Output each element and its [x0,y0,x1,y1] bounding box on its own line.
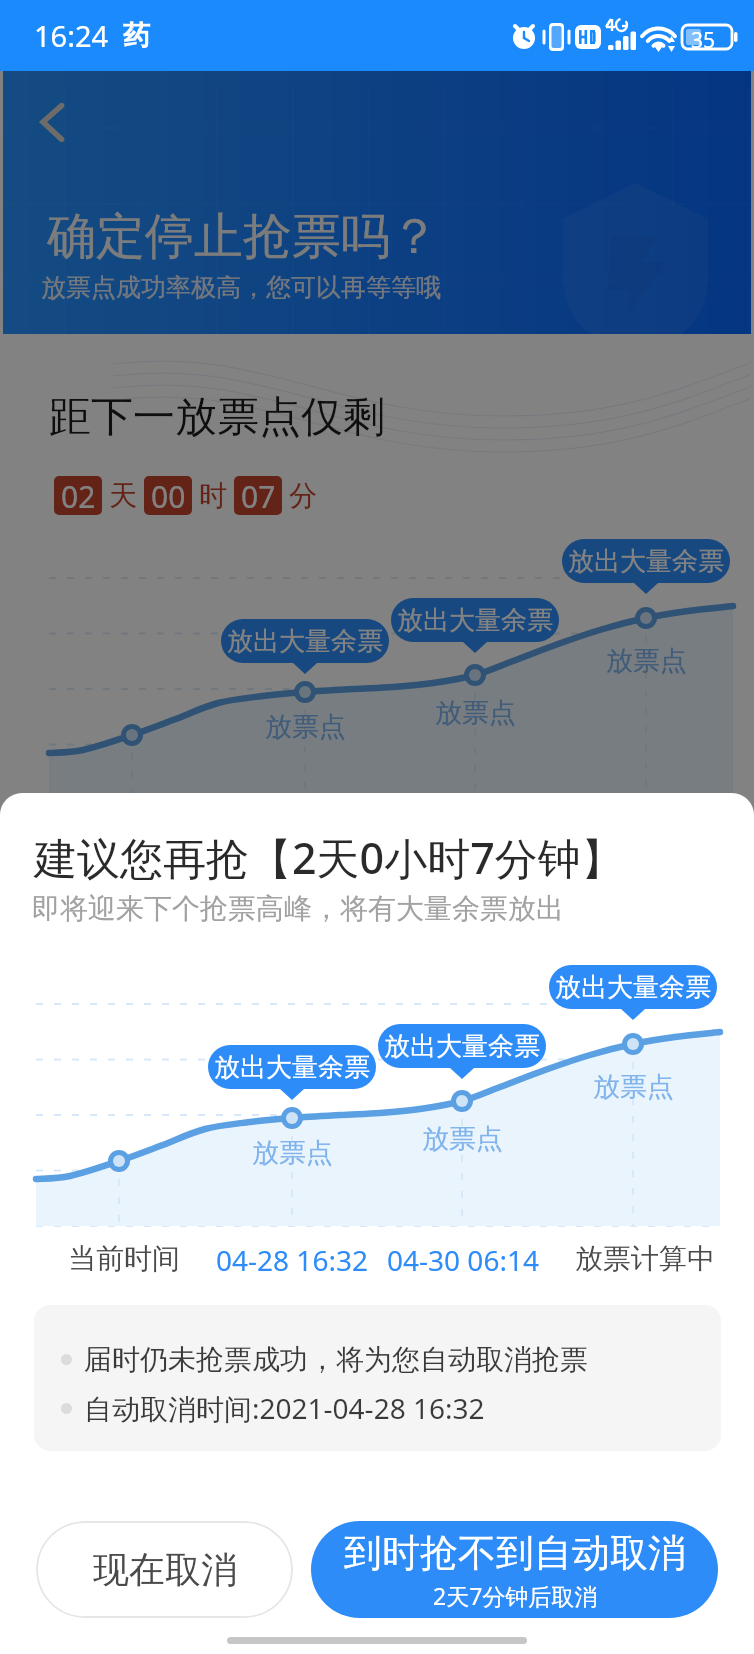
button[interactable]: Back [20,92,80,152]
staticText: 放出大量余票 [227,625,383,658]
staticText: 04-28 16:32 [216,1241,368,1279]
staticText: 放出大量余票 [397,604,553,637]
staticText: 2天7分钟后取消 [433,1580,598,1611]
staticText: 放票点 [593,1070,674,1104]
staticText: 07 [241,476,276,515]
staticText: 放票点 [435,696,516,730]
staticText: 当前时间 [68,1241,180,1276]
button[interactable]: 到时抢不到自动取消 [311,1521,718,1618]
staticText: 放票点 [606,644,687,678]
staticText: 16:24 [34,16,109,55]
staticText: 时 [199,478,227,513]
staticText: 00 [151,476,186,515]
staticText: 现在取消 [93,1547,237,1592]
staticText: 分 [289,478,317,513]
staticText: 放出大量余票 [555,971,711,1004]
staticText: 放票点 [422,1122,503,1156]
staticText: 天 [109,478,137,513]
staticText: 距下一放票点仅剩 [49,391,385,444]
staticText: 04-30 06:14 [387,1241,539,1279]
staticText: 确定停止抢票吗？ [47,206,439,268]
staticText: 放出大量余票 [384,1030,540,1063]
staticText: 放票点 [265,710,346,744]
staticText: 到时抢不到自动取消 [344,1529,686,1577]
staticText: 放票点成功率极高，您可以再等等哦 [41,272,441,303]
staticText: 药 [123,19,150,53]
staticText: 放出大量余票 [214,1051,370,1084]
staticText: 届时仍未抢票成功，将为您自动取消抢票 [84,1342,588,1377]
staticText: 放票点 [252,1136,333,1170]
staticText: 02 [61,476,96,515]
staticText: 建议您再抢【2天0小时7分钟】 [34,828,624,887]
button[interactable]: 现在取消 [36,1521,293,1618]
staticText: 自动取消时间:2021-04-28 16:32 [84,1389,485,1427]
staticText: 即将迎来下个抢票高峰，将有大量余票放出 [32,891,564,926]
staticText: 35 [691,26,716,55]
staticText: 放出大量余票 [568,545,724,578]
staticText: 放票计算中 [575,1241,715,1276]
